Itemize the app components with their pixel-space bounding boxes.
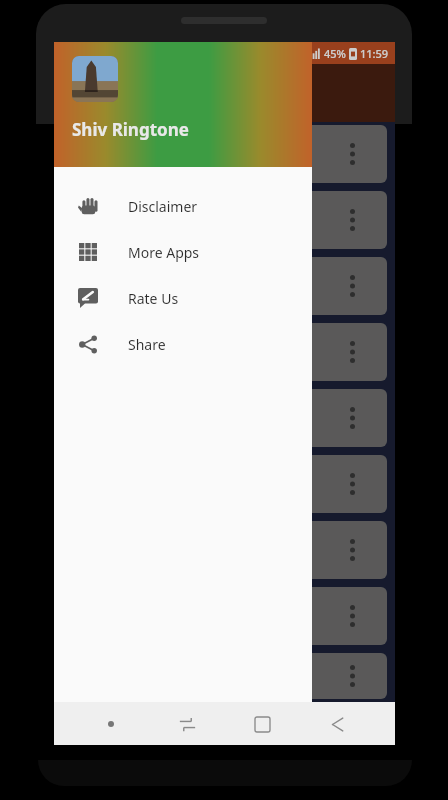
button[interactable]: More options xyxy=(62,257,387,315)
button[interactable]: More options xyxy=(62,521,387,579)
button[interactable]: More options xyxy=(62,653,387,699)
staticText: 45% xyxy=(324,46,346,61)
button[interactable]: Back xyxy=(320,706,356,742)
staticText: Rate Us xyxy=(128,289,179,308)
button[interactable]: Recents xyxy=(169,706,205,742)
button[interactable]: More options xyxy=(343,141,361,167)
staticText: Disclaimer xyxy=(128,197,198,216)
staticText: VoLTE xyxy=(291,47,306,54)
button[interactable]: More options xyxy=(343,273,361,299)
button[interactable]: Menu xyxy=(93,706,129,742)
button[interactable]: More options xyxy=(343,471,361,497)
button[interactable]: More options xyxy=(62,455,387,513)
button[interactable]: More options xyxy=(343,537,361,563)
button[interactable]: Home xyxy=(244,706,280,742)
staticText: More Apps xyxy=(128,243,200,262)
button[interactable]: Rate Us xyxy=(54,275,312,321)
button[interactable]: More options xyxy=(343,207,361,233)
button[interactable]: More options xyxy=(343,603,361,629)
button[interactable]: Menu xyxy=(93,706,129,742)
button[interactable]: Recents xyxy=(169,706,205,742)
button[interactable]: More options xyxy=(62,323,387,381)
button[interactable]: More options xyxy=(343,663,361,689)
button[interactable]: More options xyxy=(343,339,361,365)
staticText: Shiv Ringtone xyxy=(72,118,189,141)
button[interactable]: Disclaimer xyxy=(54,183,312,229)
button[interactable]: Back xyxy=(320,706,356,742)
button[interactable]: Home xyxy=(244,706,280,742)
button[interactable]: More options xyxy=(62,587,387,645)
button[interactable]: More Apps xyxy=(54,229,312,275)
button[interactable]: More options xyxy=(62,125,387,183)
staticText: 11:59 xyxy=(360,46,389,61)
staticText: Share xyxy=(128,335,166,354)
button[interactable]: Shiv Ringtone xyxy=(54,42,312,167)
button[interactable]: More options xyxy=(62,389,387,447)
button[interactable]: More options xyxy=(343,405,361,431)
button[interactable]: More options xyxy=(62,191,387,249)
button[interactable]: Share xyxy=(54,321,312,367)
